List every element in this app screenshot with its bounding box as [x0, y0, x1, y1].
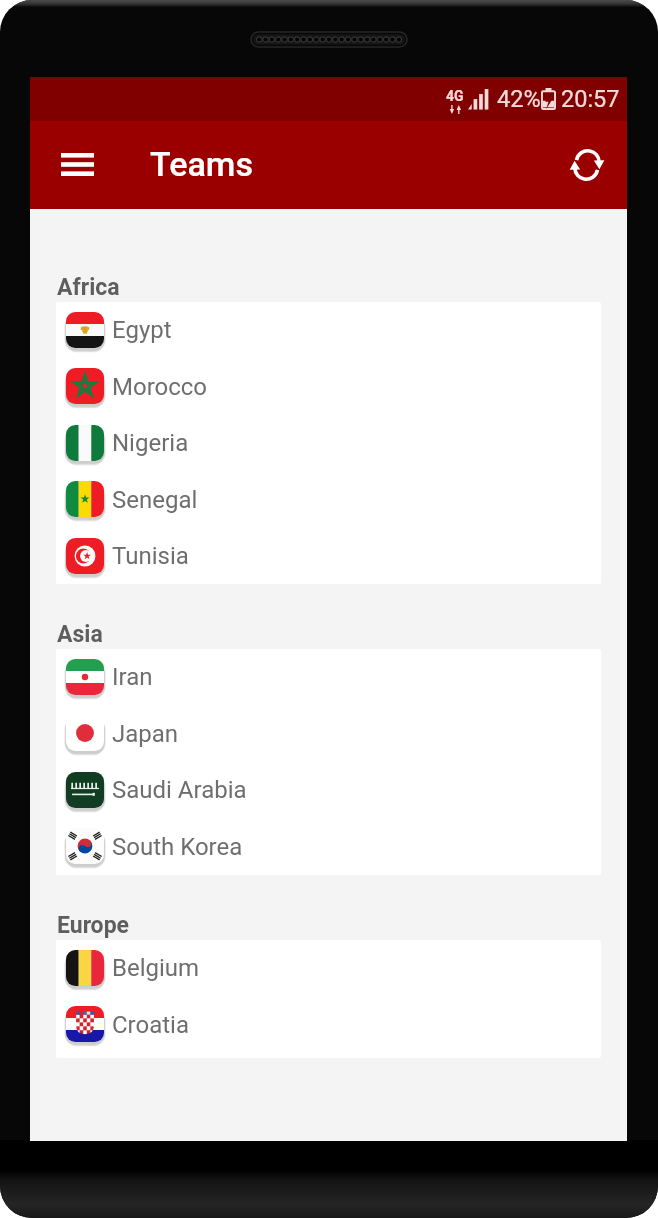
button[interactable]: Japan [56, 705, 601, 762]
button[interactable]: Nigeria [56, 415, 601, 471]
staticText: Egypt [112, 316, 172, 344]
button[interactable]: South Korea [56, 818, 601, 875]
button[interactable]: Tunisia [56, 528, 601, 584]
staticText: Europe [57, 912, 130, 939]
button[interactable]: Refresh [557, 135, 617, 195]
button[interactable]: Belgium [56, 940, 601, 996]
staticText: Belgium [112, 954, 200, 982]
staticText: Croatia [112, 1011, 190, 1039]
staticText: South Korea [112, 833, 243, 861]
button[interactable]: Croatia [56, 996, 601, 1053]
staticText: Saudi Arabia [112, 776, 247, 804]
staticText: 20:57 [561, 85, 620, 113]
button[interactable]: Egypt [56, 302, 601, 358]
staticText: Senegal [112, 486, 198, 514]
staticText: Tunisia [112, 542, 189, 570]
staticText: Teams [150, 144, 253, 184]
button[interactable]: Iran [56, 649, 601, 705]
button[interactable]: Open navigation menu [47, 134, 107, 194]
button[interactable]: Saudi Arabia [56, 762, 601, 818]
staticText: Nigeria [112, 429, 189, 457]
staticText: 42% [497, 85, 541, 113]
button[interactable]: Morocco [56, 358, 601, 415]
staticText: Iran [112, 663, 153, 691]
staticText: 4G [446, 88, 464, 104]
button[interactable]: Senegal [56, 471, 601, 528]
staticText: Asia [57, 621, 103, 648]
staticText: Japan [112, 720, 179, 748]
staticText: Africa [57, 274, 120, 301]
staticText: Morocco [112, 373, 208, 401]
